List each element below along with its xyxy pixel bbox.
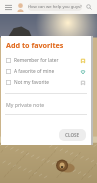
staticText: A favorite of mine	[14, 68, 55, 75]
button[interactable]: Search	[84, 2, 94, 12]
button[interactable]: Remember for later	[1, 55, 91, 66]
staticText: Not my favorite	[14, 79, 50, 86]
button[interactable]: A favorite of mine	[1, 66, 91, 77]
button[interactable]: How can we help you guys?	[28, 3, 82, 11]
button[interactable]: Menu	[3, 2, 14, 13]
staticText: My private note	[6, 101, 45, 108]
staticText: Add to favorites	[6, 40, 64, 50]
staticText: How can we help you guys?	[28, 4, 82, 10]
staticText: Remember for later	[14, 57, 59, 64]
button[interactable]: CLOSE	[59, 129, 86, 141]
button[interactable]: Not my favorite	[1, 77, 91, 88]
button[interactable]: Profile	[15, 2, 26, 13]
staticText: CLOSE	[65, 132, 80, 138]
button[interactable]: My private note	[6, 99, 91, 110]
